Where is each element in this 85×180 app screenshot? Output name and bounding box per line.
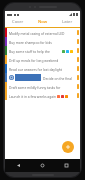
staticText: Buy more shampoo for kids <box>9 40 52 44</box>
button[interactable]: Reorder <box>75 73 80 82</box>
button[interactable]: Read our answers for lost daylight <box>5 64 80 73</box>
staticText: Cover <box>12 19 24 25</box>
button[interactable]: Now <box>30 17 55 27</box>
staticText: Later <box>62 19 73 25</box>
staticText: Decide on the final name for the app <box>43 76 73 80</box>
button[interactable]: Cover <box>5 17 30 27</box>
button[interactable]: Back <box>15 162 22 169</box>
button[interactable]: Reorder <box>75 37 80 46</box>
staticText: Now <box>38 19 48 25</box>
button[interactable]: Recents <box>63 162 70 169</box>
button[interactable]: Draft some mildly funny tasks for screen… <box>5 82 80 91</box>
button[interactable]: Buy some stuff to help the squirrel <box>5 46 80 55</box>
staticText: Modify metal casing of external LED ligh… <box>9 31 73 35</box>
staticText: Draft some mildly funny tasks for screen… <box>9 85 73 89</box>
button[interactable]: Reorder <box>75 82 80 91</box>
button[interactable]: Reorder <box>75 46 80 55</box>
button[interactable]: Later <box>55 17 80 27</box>
button[interactable]: Launch it in a few weeks again <box>5 91 80 100</box>
staticText: Buy some stuff to help the squirrel <box>9 49 61 53</box>
button[interactable]: Home <box>39 162 46 169</box>
staticText: Read our answers for lost daylight <box>9 67 62 71</box>
button[interactable]: Buy more shampoo for kids <box>5 37 80 46</box>
staticText: Drill up meals for long weekend <box>9 58 59 62</box>
button[interactable]: Modify metal casing of external LED ligh… <box>5 28 80 37</box>
button[interactable]: Drill up meals for long weekend <box>5 55 80 64</box>
staticText: Launch it in a few weeks again <box>9 94 56 98</box>
button[interactable]: Decide on the final name for the app <box>5 73 80 82</box>
button[interactable]: Reorder <box>75 64 80 73</box>
button[interactable]: Reorder <box>75 91 80 100</box>
button[interactable]: Reorder <box>75 55 80 64</box>
button[interactable]: Reorder <box>75 28 80 37</box>
button[interactable]: Add task <box>62 141 74 153</box>
